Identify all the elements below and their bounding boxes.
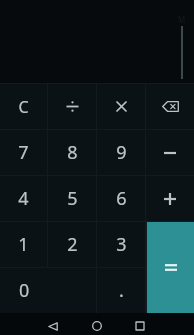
staticText: 0 — [19, 278, 30, 303]
staticText: 3 — [116, 232, 127, 257]
button[interactable]: Plus — [146, 176, 194, 221]
staticText: M — [178, 14, 186, 25]
staticText: 1 — [18, 232, 29, 257]
button[interactable]: 5 — [48, 176, 96, 221]
staticText: C — [18, 96, 29, 118]
button[interactable]: 3 — [97, 222, 145, 267]
button[interactable]: 9 — [97, 130, 145, 175]
button[interactable]: Equals — [147, 222, 194, 313]
button[interactable]: 2 — [48, 222, 96, 267]
button[interactable]: 4 — [0, 176, 47, 221]
staticText: 4 — [18, 186, 29, 211]
button[interactable]: 1 — [0, 222, 47, 267]
button[interactable]: Home — [84, 317, 110, 335]
button[interactable]: Multiply — [97, 84, 145, 129]
button[interactable]: Recent apps — [127, 317, 153, 335]
staticText: 8 — [67, 140, 78, 165]
button[interactable]: . — [97, 268, 145, 313]
button[interactable]: 0 — [0, 268, 96, 313]
button[interactable]: Minus — [146, 130, 194, 175]
staticText: 7 — [18, 140, 29, 165]
staticText: . — [119, 278, 124, 303]
button[interactable]: Backspace — [146, 84, 194, 129]
staticText: 6 — [116, 186, 127, 211]
button[interactable]: C — [0, 84, 47, 129]
staticText: 9 — [116, 140, 127, 165]
button[interactable]: Divide — [48, 84, 96, 129]
button[interactable]: 8 — [48, 130, 96, 175]
button[interactable]: 7 — [0, 130, 47, 175]
staticText: 5 — [67, 186, 78, 211]
staticText: 2 — [67, 232, 78, 257]
button[interactable]: Back — [40, 317, 66, 335]
button[interactable]: 6 — [97, 176, 145, 221]
